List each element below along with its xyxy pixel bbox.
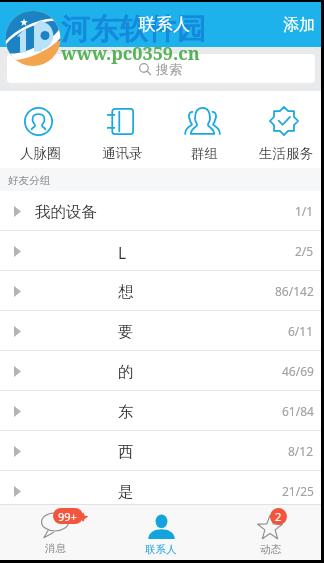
button[interactable]: 要 <box>0 311 321 351</box>
staticText: 86/142 <box>275 283 314 299</box>
button[interactable]: 想 <box>0 271 321 311</box>
staticText: 99+ <box>58 509 77 524</box>
button[interactable]: 西 <box>0 431 321 471</box>
staticText: 消息 <box>45 542 66 555</box>
staticText: 的 <box>118 362 134 382</box>
staticText: 人脉圈 <box>20 145 61 162</box>
staticText: 联系人 <box>145 543 177 556</box>
staticText: 群组 <box>191 145 218 162</box>
button[interactable]: 通讯录 <box>81 91 159 168</box>
staticText: 1/1 <box>295 203 314 219</box>
staticText: 东 <box>118 402 134 422</box>
button[interactable]: 东 <box>0 391 321 431</box>
button[interactable]: 添加 <box>0 2 324 47</box>
staticText: www.pc0359.cn <box>61 41 200 66</box>
button[interactable]: 生活服务 <box>245 91 323 168</box>
staticText: 要 <box>118 322 134 342</box>
staticText: 搜索 <box>156 61 182 77</box>
staticText: 河东软件园 <box>61 11 206 48</box>
button[interactable]: 添加 <box>271 5 324 45</box>
staticText: 2/5 <box>295 243 314 259</box>
staticText: L <box>118 242 127 263</box>
button[interactable]: 群组 <box>163 91 241 168</box>
staticText: 2 <box>275 509 282 524</box>
button[interactable]: Messages <box>2 504 108 560</box>
staticText: 好友分组 <box>8 174 51 187</box>
staticText: 21/25 <box>282 483 314 499</box>
button[interactable]: 的 <box>0 351 321 391</box>
staticText: 联系人 <box>139 14 190 35</box>
staticText: 是 <box>118 482 134 502</box>
staticText: 想 <box>118 282 134 302</box>
staticText: 动态 <box>260 543 281 556</box>
staticText: 我的设备 <box>35 202 97 222</box>
button[interactable]: L <box>0 231 321 271</box>
button[interactable]: Activity <box>217 504 323 560</box>
staticText: 通讯录 <box>102 145 143 162</box>
staticText: 生活服务 <box>259 145 313 162</box>
button[interactable]: 人脉圈 <box>0 91 77 168</box>
staticText: 61/84 <box>282 403 314 419</box>
staticText: 西 <box>118 442 134 462</box>
staticText: 46/69 <box>282 363 314 379</box>
staticText: 添加 <box>283 15 315 35</box>
button[interactable]: 我的设备 <box>0 191 321 231</box>
staticText: 6/11 <box>288 323 314 339</box>
staticText: 8/12 <box>288 443 314 459</box>
button[interactable]: 搜索 <box>7 54 315 83</box>
button[interactable]: 是 <box>0 471 321 511</box>
button[interactable]: Contacts <box>108 504 214 560</box>
